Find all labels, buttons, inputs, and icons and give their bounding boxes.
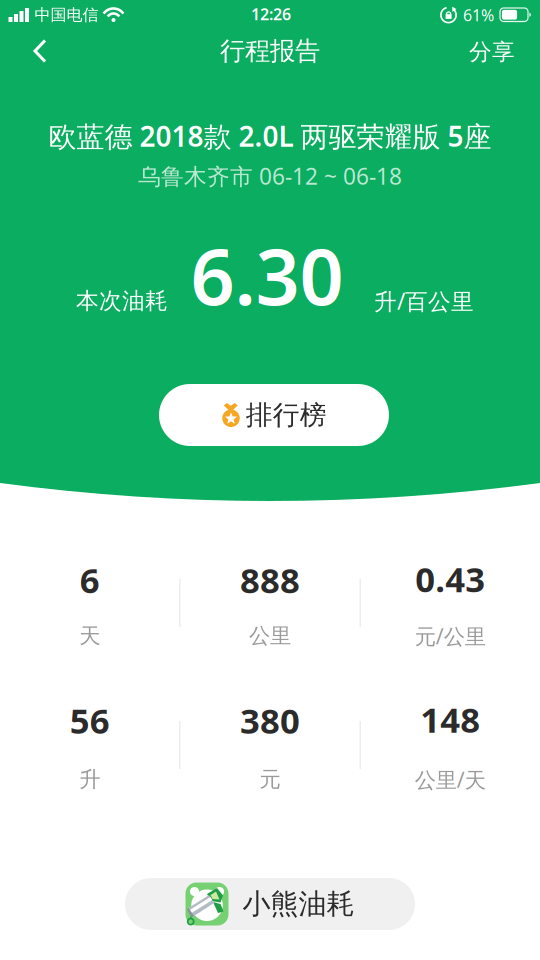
staticText: 升: [79, 766, 100, 793]
staticText: 小熊油耗: [242, 887, 354, 921]
button[interactable]: Back: [15, 31, 65, 71]
staticText: 公里/天: [415, 765, 486, 794]
button[interactable]: 分享: [455, 32, 529, 72]
staticText: 元: [259, 766, 280, 793]
staticText: 888: [240, 557, 300, 603]
staticText: 本次油耗: [76, 287, 168, 315]
staticText: 380: [240, 697, 300, 743]
button[interactable]: 排行榜: [159, 384, 389, 446]
staticText: 元/公里: [415, 622, 486, 650]
staticText: 12:26: [251, 3, 291, 25]
staticText: 行程报告: [220, 35, 320, 66]
staticText: 分享: [469, 38, 515, 66]
staticText: 56: [70, 697, 110, 743]
button[interactable]: 小熊油耗: [125, 878, 415, 930]
staticText: 天: [79, 623, 100, 649]
staticText: 中国电信: [34, 5, 98, 25]
staticText: 61%: [463, 4, 494, 26]
staticText: 乌鲁木齐市 06-12 ~ 06-18: [138, 161, 402, 191]
staticText: 升/百公里: [374, 286, 474, 316]
staticText: 公里: [249, 623, 291, 649]
staticText: 6: [80, 557, 100, 603]
staticText: 6.30: [190, 224, 343, 326]
staticText: 0.43: [415, 556, 485, 602]
staticText: 排行榜: [246, 399, 327, 431]
staticText: 欧蓝德 2018款 2.0L 两驱荣耀版 5座: [48, 117, 491, 155]
staticText: 148: [420, 696, 480, 742]
